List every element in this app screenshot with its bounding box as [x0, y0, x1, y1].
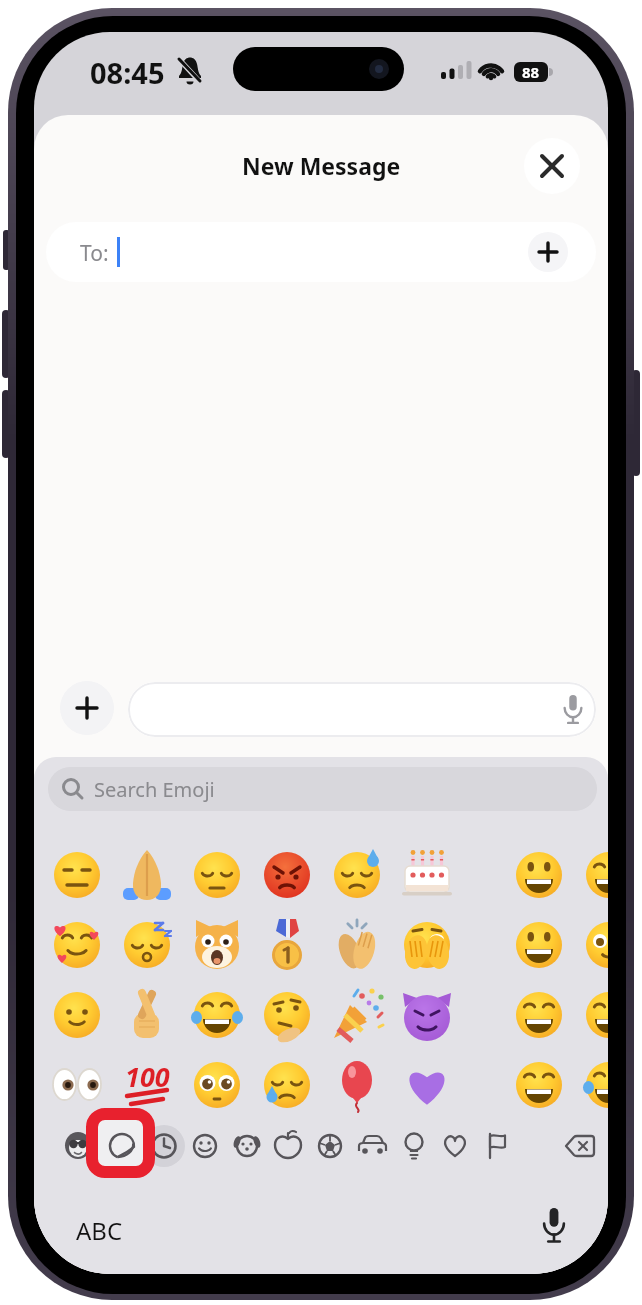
button[interactable] [475, 1124, 519, 1168]
button[interactable] [49, 987, 105, 1043]
button[interactable] [189, 847, 245, 903]
button[interactable] [581, 987, 608, 1043]
button[interactable] [100, 1124, 144, 1168]
button[interactable] [119, 987, 175, 1043]
button[interactable] [142, 1124, 186, 1168]
button[interactable]: Search Emoji [48, 767, 597, 811]
button[interactable] [189, 1057, 245, 1113]
button[interactable] [128, 682, 596, 737]
staticText: 08:45 [90, 53, 165, 92]
button[interactable] [329, 987, 385, 1043]
button[interactable] [189, 987, 245, 1043]
button[interactable] [399, 1057, 455, 1113]
button[interactable] [350, 1124, 394, 1168]
button[interactable] [308, 1124, 352, 1168]
button[interactable] [49, 917, 105, 973]
button[interactable] [581, 917, 608, 973]
button[interactable] [49, 1057, 105, 1113]
button[interactable] [183, 1124, 227, 1168]
button[interactable] [433, 1124, 477, 1168]
button[interactable] [528, 232, 568, 272]
button[interactable] [534, 1204, 574, 1248]
button[interactable] [56, 1124, 100, 1168]
button[interactable] [511, 917, 567, 973]
button[interactable] [329, 1057, 385, 1113]
button[interactable] [392, 1124, 436, 1168]
button[interactable] [329, 917, 385, 973]
staticText: New Message [242, 150, 401, 181]
button[interactable] [259, 1057, 315, 1113]
button[interactable] [399, 987, 455, 1043]
staticText: 88 [522, 62, 540, 82]
button[interactable] [266, 1124, 310, 1168]
button[interactable] [511, 847, 567, 903]
button[interactable] [60, 681, 114, 735]
staticText: To: [80, 239, 109, 268]
button[interactable] [511, 987, 567, 1043]
button[interactable] [399, 917, 455, 973]
button[interactable] [581, 847, 608, 903]
button[interactable]: ABC [64, 1210, 134, 1250]
button[interactable] [259, 917, 315, 973]
button[interactable] [119, 917, 175, 973]
button[interactable] [259, 847, 315, 903]
button[interactable] [189, 917, 245, 973]
button[interactable] [581, 1057, 608, 1113]
button[interactable] [225, 1124, 269, 1168]
button[interactable] [329, 847, 385, 903]
staticText: Search Emoji [94, 776, 215, 803]
button[interactable] [119, 847, 175, 903]
button[interactable] [524, 138, 580, 194]
staticText: 100 [125, 1058, 170, 1095]
button[interactable] [399, 847, 455, 903]
button[interactable]: To: [46, 222, 596, 282]
button[interactable]: 100 [119, 1057, 175, 1113]
button[interactable] [259, 987, 315, 1043]
button[interactable] [511, 1057, 567, 1113]
staticText: ABC [76, 1214, 123, 1247]
button[interactable] [49, 847, 105, 903]
button[interactable] [558, 1124, 602, 1168]
